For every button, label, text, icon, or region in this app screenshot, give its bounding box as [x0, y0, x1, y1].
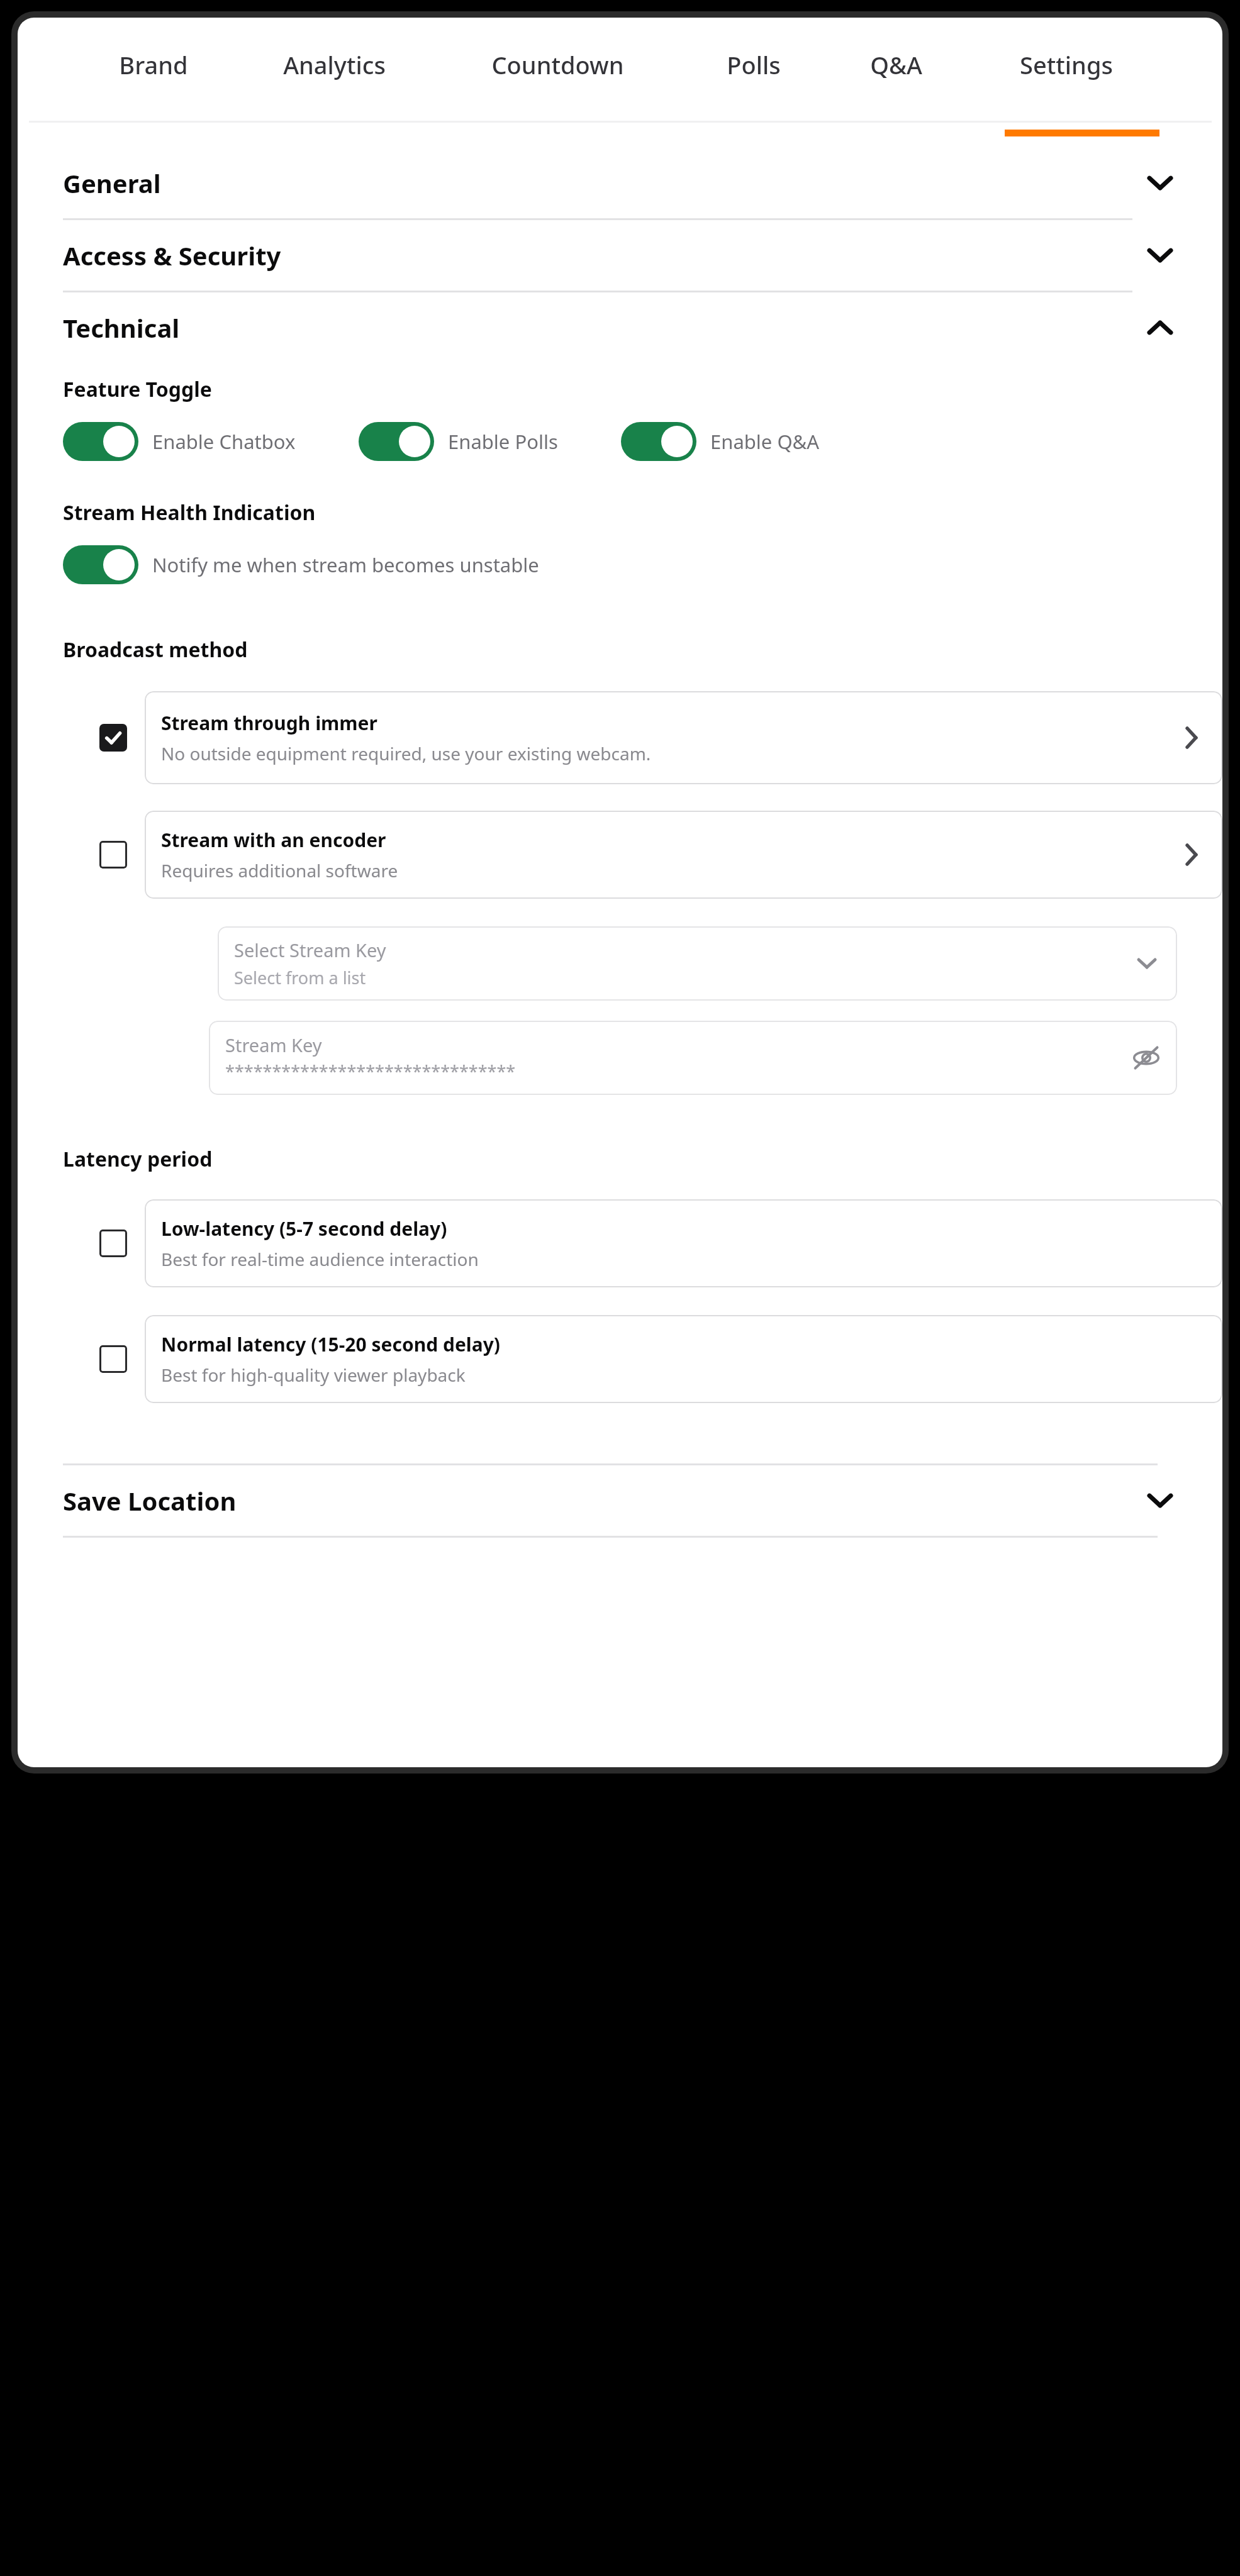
staticText: Technical [63, 311, 1143, 345]
button[interactable]: Access & Security [18, 220, 1222, 291]
staticText: Stream Key [225, 1033, 322, 1057]
button[interactable]: Low-latency (5-7 second delay) [145, 1199, 1222, 1287]
staticText: Requires additional software [161, 858, 398, 882]
button[interactable]: Show stream key [1132, 1043, 1161, 1072]
button[interactable]: Enable Polls [359, 422, 558, 461]
staticText: ******************************* [225, 1060, 516, 1083]
staticText: Normal latency (15-20 second delay) [161, 1331, 501, 1357]
staticText: Analytics [283, 48, 386, 81]
staticText: Broadcast method [63, 636, 248, 663]
button[interactable]: Polls [679, 18, 827, 112]
button[interactable]: Stream through immer [145, 691, 1222, 784]
staticText: Countdown [491, 48, 624, 81]
button[interactable]: Enable Chatbox [63, 422, 296, 461]
staticText: Best for high-quality viewer playback [161, 1363, 466, 1387]
staticText: Polls [727, 48, 781, 81]
staticText: No outside equipment required, use your … [161, 741, 651, 765]
staticText: Best for real-time audience interaction [161, 1247, 479, 1271]
button[interactable]: Select Stream Key [218, 926, 1177, 1001]
button[interactable]: Select option [99, 1345, 127, 1373]
staticText: Access & Security [63, 238, 1143, 272]
staticText: Latency period [63, 1145, 213, 1173]
button[interactable]: Select option [99, 1230, 127, 1257]
staticText: General [63, 166, 1143, 200]
staticText: Q&A [870, 48, 922, 81]
staticText: Feature Toggle [63, 375, 212, 403]
button[interactable]: Q&A [827, 18, 965, 112]
button[interactable]: Brand [73, 18, 233, 112]
staticText: Enable Q&A [710, 428, 820, 455]
staticText: Stream with an encoder [161, 827, 386, 853]
staticText: Enable Polls [448, 428, 558, 455]
staticText: Stream Health Indication [63, 499, 316, 526]
staticText: Enable Chatbox [152, 428, 296, 455]
staticText: Low-latency (5-7 second delay) [161, 1216, 447, 1241]
button[interactable]: Countdown [435, 18, 679, 112]
button[interactable]: Save Location [18, 1465, 1222, 1536]
button[interactable]: Notify me when stream becomes unstable [63, 545, 539, 584]
button[interactable]: Select option [99, 841, 127, 869]
staticText: Select Stream Key [234, 938, 386, 962]
staticText: Notify me when stream becomes unstable [152, 552, 539, 578]
button[interactable]: Settings [965, 18, 1167, 112]
button[interactable]: Stream with an encoder [145, 811, 1222, 899]
staticText: Stream through immer [161, 710, 377, 736]
button[interactable]: Technical [18, 292, 1222, 363]
staticText: Settings [1020, 48, 1113, 81]
button[interactable]: Stream Key [209, 1021, 1177, 1095]
staticText: Save Location [63, 1484, 1143, 1518]
button[interactable]: Enable Q&A [621, 422, 820, 461]
button[interactable]: Normal latency (15-20 second delay) [145, 1315, 1222, 1403]
staticText: Brand [119, 48, 188, 81]
staticText: Select from a list [234, 966, 366, 989]
button[interactable]: Analytics [233, 18, 435, 112]
button[interactable]: Selected option [99, 724, 127, 752]
button[interactable]: General [18, 148, 1222, 218]
